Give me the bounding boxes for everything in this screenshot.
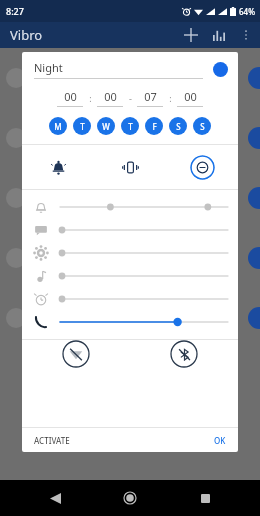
staticText: ACTIVATE [34,435,70,446]
button[interactable]: 00 [97,89,123,104]
button[interactable]: More options [238,27,254,43]
button[interactable]: 00 [57,89,83,104]
staticText: M [54,121,62,132]
button[interactable]: F [145,117,163,135]
staticText: 8:27 [6,5,24,17]
staticText: T [128,121,133,132]
staticText: : [169,92,172,104]
button[interactable]: T [121,117,139,135]
button[interactable] [22,241,238,264]
staticText: S [200,121,205,132]
staticText: Night [34,60,63,75]
button[interactable]: OK [212,432,228,449]
staticText: F [152,121,157,132]
button[interactable]: Vibrate [94,145,166,189]
staticText: S [176,121,181,132]
button[interactable]: Back [42,485,68,511]
staticText: - [129,92,132,104]
staticText: 00 [64,89,77,104]
staticText: 00 [184,89,197,104]
staticText: : [89,92,92,104]
button[interactable] [22,310,238,333]
button[interactable]: S [193,117,211,135]
button[interactable]: Color [213,62,228,77]
staticText: 64% [239,6,255,17]
button[interactable]: Bluetooth off [130,340,238,368]
button[interactable]: M [49,117,67,135]
button[interactable]: Add [182,26,200,44]
button[interactable] [22,264,238,287]
staticText: 07 [144,89,157,104]
button[interactable]: Statistics [210,26,228,44]
button[interactable]: Wi-Fi off [22,340,130,368]
button[interactable]: 00 [177,89,203,104]
button[interactable]: Recents [192,485,218,511]
staticText: OK [214,435,226,446]
button[interactable]: Home [117,485,143,511]
staticText: 00 [104,89,117,104]
button[interactable] [22,218,238,241]
button[interactable]: W [97,117,115,135]
button[interactable]: T [73,117,91,135]
staticText: T [80,121,85,132]
button[interactable]: 07 [137,89,163,104]
staticText: W [102,121,110,132]
button[interactable] [22,287,238,310]
staticText: Vibro [10,26,43,44]
button[interactable]: ACTIVATE [32,432,72,449]
button[interactable] [22,195,238,218]
button[interactable]: Silent [166,145,238,189]
button[interactable]: S [169,117,187,135]
button[interactable]: Ring [22,145,94,189]
